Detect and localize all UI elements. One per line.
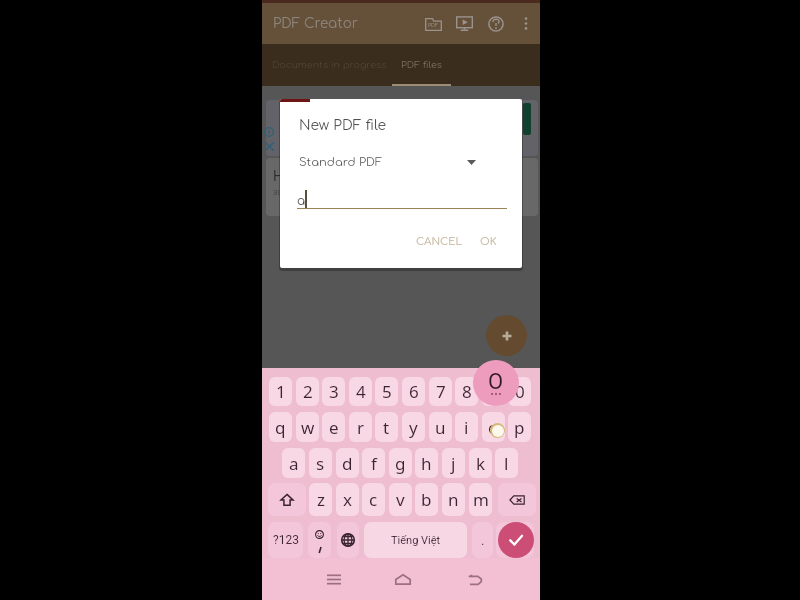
button[interactable]: n	[442, 483, 465, 516]
staticText: 4	[356, 380, 366, 403]
staticText: t	[383, 416, 390, 439]
staticText: 8	[462, 380, 472, 403]
button[interactable]: Back	[451, 558, 499, 600]
staticText: PDF Creator	[273, 16, 358, 31]
button[interactable]: p	[508, 412, 531, 442]
staticText: a	[289, 452, 299, 475]
button[interactable]: u	[429, 412, 452, 442]
staticText: q	[275, 416, 286, 439]
button[interactable]: 9	[482, 377, 505, 406]
button[interactable]: k	[469, 448, 492, 478]
staticText: PDF files	[401, 60, 442, 71]
button[interactable]: Help	[480, 9, 511, 38]
button[interactable]: j	[442, 448, 465, 478]
button[interactable]: Shift	[268, 483, 306, 516]
staticText: e	[329, 416, 339, 439]
staticText: Documents in progress	[272, 60, 387, 71]
button[interactable]: f	[362, 448, 385, 478]
staticText: 2	[303, 380, 313, 403]
button[interactable]: Documents in progress	[270, 44, 389, 86]
button[interactable]: Video tutorial	[449, 9, 480, 38]
button[interactable]: w	[296, 412, 319, 442]
button[interactable]: Home	[379, 558, 427, 600]
button[interactable]: r	[349, 412, 372, 442]
button[interactable]: c	[362, 483, 385, 516]
button[interactable]: d	[336, 448, 359, 478]
staticText: Tiếng Việt	[391, 534, 441, 547]
staticText: f	[371, 452, 377, 475]
button[interactable]: s	[309, 448, 332, 478]
button[interactable]: z	[309, 483, 332, 516]
button[interactable]: l	[495, 448, 518, 478]
button[interactable]: x	[336, 483, 359, 516]
staticText: m	[473, 488, 489, 511]
staticText: d	[342, 452, 353, 475]
staticText: .	[481, 533, 485, 548]
button[interactable]: Enter	[498, 522, 534, 558]
staticText: 9	[489, 380, 499, 403]
button[interactable]: Create new PDF	[486, 315, 527, 356]
button[interactable]: 1	[269, 377, 292, 406]
button[interactable]: .	[472, 522, 493, 558]
button[interactable]: y	[402, 412, 425, 442]
button[interactable]: v	[389, 483, 412, 516]
button[interactable]: PDF documents	[418, 9, 449, 38]
button[interactable]: 0	[508, 377, 531, 406]
staticText: k	[476, 452, 486, 475]
staticText: CANCEL	[416, 236, 463, 248]
staticText: v	[396, 488, 405, 511]
staticText: u	[435, 416, 446, 439]
button[interactable]: Standard PDF	[295, 150, 508, 174]
staticText: 0	[515, 380, 525, 403]
button[interactable]: More options	[510, 9, 541, 38]
button[interactable]: i	[455, 412, 478, 442]
staticText: ?123	[273, 533, 299, 547]
staticText: n	[448, 488, 459, 511]
staticText: z	[317, 488, 325, 511]
button[interactable]: m	[469, 483, 492, 516]
button[interactable]: 2	[296, 377, 319, 406]
button[interactable]: Recent apps	[310, 558, 358, 600]
staticText: PDF	[428, 23, 439, 29]
staticText: Standard PDF	[299, 156, 383, 169]
button[interactable]: Tiếng Việt	[364, 522, 467, 558]
button[interactable]: PDF files	[392, 44, 451, 86]
staticText: y	[409, 416, 418, 439]
staticText: O	[488, 369, 504, 395]
staticText: OK	[480, 236, 497, 248]
button[interactable]: 7	[429, 377, 452, 406]
staticText: r	[357, 416, 365, 439]
button[interactable]: e	[322, 412, 345, 442]
staticText: j	[451, 452, 456, 475]
staticText: h	[421, 452, 432, 475]
button[interactable]: ?123	[268, 522, 303, 558]
button[interactable]: 6	[402, 377, 425, 406]
staticText: b	[421, 488, 432, 511]
button[interactable]: a	[282, 448, 305, 478]
staticText: 30	[273, 188, 282, 197]
button[interactable]: 5	[375, 377, 398, 406]
staticText: p	[514, 416, 525, 439]
button[interactable]: 4	[349, 377, 372, 406]
staticText: H	[273, 168, 283, 184]
staticText: g	[395, 452, 406, 475]
staticText: i	[464, 416, 469, 439]
staticText: New PDF file	[299, 118, 387, 134]
button[interactable]: t	[375, 412, 398, 442]
button[interactable]: CANCEL	[411, 229, 468, 255]
button[interactable]: h	[415, 448, 438, 478]
staticText: s	[316, 452, 325, 475]
staticText: 5	[382, 380, 392, 403]
staticText: 6	[409, 380, 419, 403]
button[interactable]: o	[482, 412, 505, 442]
button[interactable]: Change language	[337, 522, 359, 558]
button[interactable]: b	[415, 483, 438, 516]
button[interactable]: g	[389, 448, 412, 478]
button[interactable]: q	[269, 412, 292, 442]
staticText: x	[343, 488, 352, 511]
button[interactable]: Emoji and comma	[308, 522, 331, 558]
button[interactable]: 3	[322, 377, 345, 406]
button[interactable]: Backspace	[498, 483, 536, 516]
button[interactable]: 8	[455, 377, 478, 406]
button[interactable]: OK	[473, 229, 504, 255]
